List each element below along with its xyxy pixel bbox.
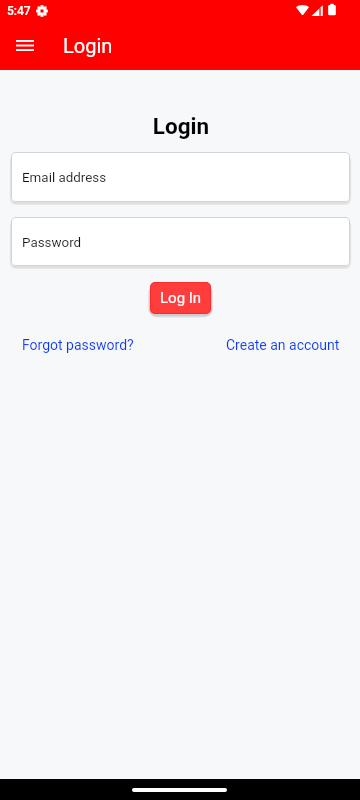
button[interactable]: Email address — [11, 152, 350, 202]
staticText: Password — [22, 235, 82, 251]
button[interactable]: Forgot password? — [22, 337, 134, 353]
staticText: Login — [63, 34, 113, 57]
staticText: Login — [1, 113, 360, 139]
staticText: Email address — [22, 170, 107, 186]
button[interactable]: Open navigation menu — [7, 25, 43, 65]
button[interactable]: Log In — [150, 282, 211, 314]
button[interactable]: Create an account — [226, 337, 340, 353]
staticText: Log In — [160, 289, 202, 307]
staticText: 5:47 — [7, 4, 31, 18]
button[interactable]: Password — [11, 217, 350, 266]
